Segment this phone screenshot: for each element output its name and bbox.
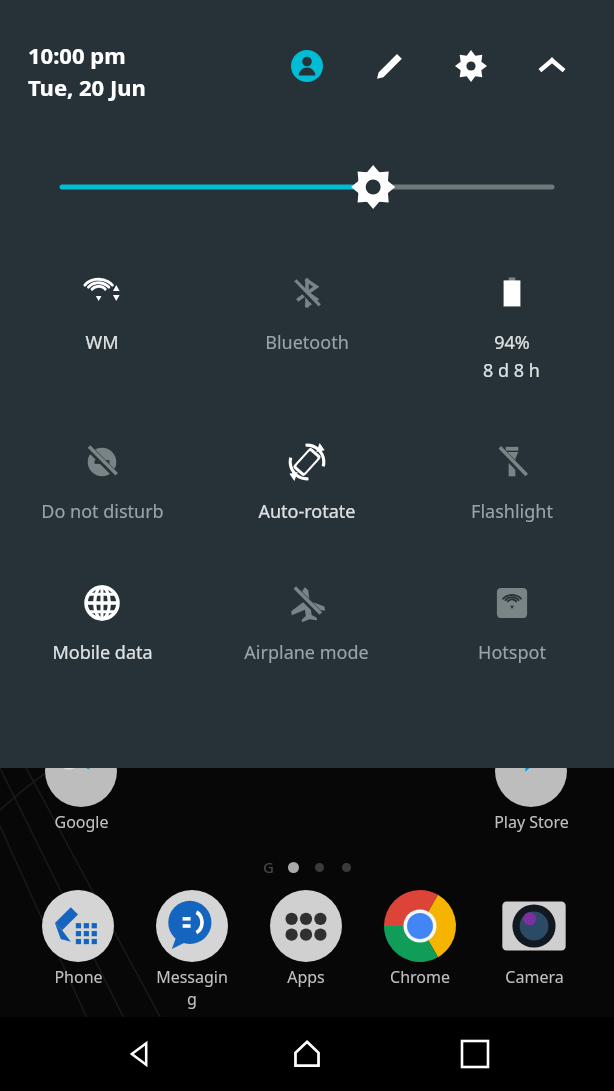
staticText: Bluetooth: [265, 330, 349, 355]
staticText: Do not disturb: [41, 499, 164, 524]
staticText: 10:00 pm: [28, 40, 126, 70]
button[interactable]: WM: [0, 270, 204, 355]
button[interactable]: Camera: [495, 890, 573, 988]
staticText: Airplane mode: [244, 640, 369, 665]
button[interactable]: Flashlight: [409, 439, 614, 524]
staticText: Camera: [505, 966, 564, 988]
button[interactable]: Play Store: [492, 735, 570, 833]
staticText: Apps: [287, 966, 325, 988]
staticText: 94%: [494, 330, 530, 355]
button[interactable]: Account: [284, 43, 330, 89]
staticText: WM: [85, 330, 119, 355]
staticText: Auto-rotate: [258, 499, 356, 524]
button[interactable]: Edit: [366, 43, 412, 89]
staticText: Play Store: [494, 811, 569, 833]
staticText: Flashlight: [471, 499, 553, 524]
staticText: Messaging: [153, 966, 231, 1010]
staticText: G: [263, 857, 274, 877]
staticText: Hotspot: [478, 640, 546, 665]
button[interactable]: Collapse: [529, 43, 575, 89]
button[interactable]: Chrome: [381, 890, 459, 988]
button[interactable]: Home: [278, 1025, 336, 1083]
button[interactable]: Mobile data: [0, 580, 204, 665]
button[interactable]: Do not disturb: [0, 439, 204, 524]
button[interactable]: Phone: [39, 890, 117, 988]
button[interactable]: Airplane mode: [204, 580, 409, 665]
button[interactable]: 94%: [409, 270, 614, 383]
staticText: Mobile data: [52, 640, 153, 665]
button[interactable]: Auto-rotate: [204, 439, 409, 524]
staticText: Phone: [54, 966, 103, 988]
staticText: Tue, 20 Jun: [28, 72, 146, 102]
staticText: Google: [54, 811, 109, 833]
button[interactable]: Brightness: [0, 164, 614, 210]
button[interactable]: Google: [42, 735, 120, 833]
button[interactable]: Apps: [267, 890, 345, 988]
staticText: Chrome: [390, 966, 450, 988]
button[interactable]: Settings: [448, 43, 494, 89]
button[interactable]: Back: [110, 1025, 168, 1083]
button[interactable]: Hotspot: [409, 580, 614, 665]
button[interactable]: Recents: [446, 1025, 504, 1083]
button[interactable]: Bluetooth: [204, 270, 409, 355]
button[interactable]: Messaging: [153, 890, 231, 1010]
staticText: 8 d 8 h: [483, 358, 540, 383]
